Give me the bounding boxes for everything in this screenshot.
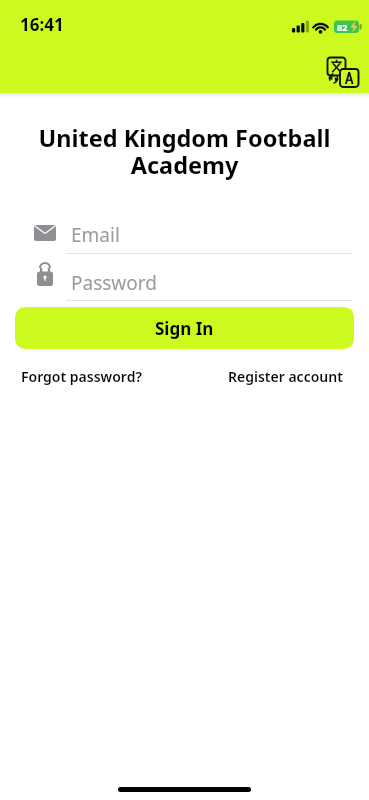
- staticText: Sign In: [155, 317, 214, 340]
- button[interactable]: Password: [0, 260, 369, 300]
- staticText: 16:41: [20, 13, 64, 36]
- staticText: United Kingdom Football Academy: [0, 122, 369, 181]
- staticText: Forgot password?: [21, 367, 142, 386]
- staticText: 82: [337, 21, 348, 33]
- staticText: Email: [71, 222, 120, 248]
- button[interactable]: Forgot password?: [21, 367, 142, 386]
- button[interactable]: Email: [0, 215, 369, 255]
- staticText: Register account: [228, 367, 343, 386]
- button[interactable]: Sign In: [15, 307, 354, 349]
- staticText: Password: [71, 270, 157, 296]
- button[interactable]: Register account: [228, 367, 343, 386]
